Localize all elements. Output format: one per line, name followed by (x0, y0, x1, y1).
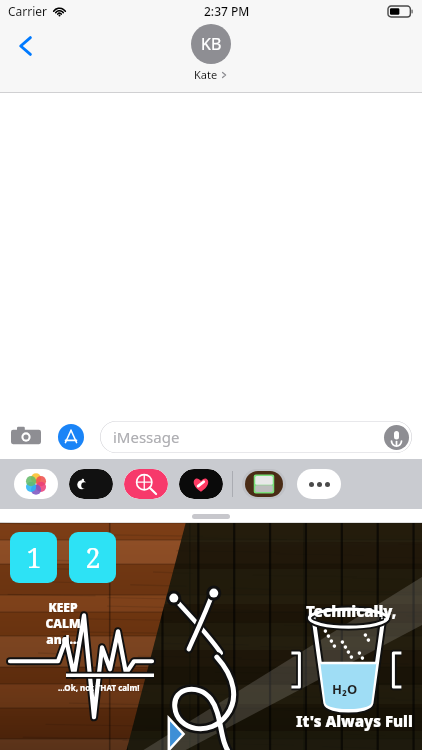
button[interactable]: App Store (56, 422, 86, 452)
button[interactable]: Images (124, 469, 168, 499)
staticText: 2:37 PM (204, 3, 250, 19)
button[interactable]: KB (191, 24, 231, 82)
button[interactable]: iMessage (100, 421, 412, 453)
staticText: H₂O (332, 680, 358, 698)
staticText: Technically, (306, 601, 397, 621)
button[interactable]: 1 (10, 532, 57, 583)
button[interactable]: Photos (14, 469, 58, 499)
button[interactable]: Stethoscope sticker (160, 589, 278, 734)
button[interactable]: Apple Pay (69, 469, 113, 499)
staticText: 1 (26, 539, 42, 576)
button[interactable]: Camera (10, 421, 42, 453)
staticText: 2 (85, 539, 101, 576)
button[interactable]: Resize panel (192, 514, 230, 519)
staticText: It's Always Full (296, 711, 413, 731)
staticText: Carrier (8, 3, 48, 19)
staticText: and... (46, 631, 80, 647)
button[interactable]: Dictate (383, 424, 409, 450)
button[interactable]: Water glass sticker (286, 591, 420, 706)
staticText: ...Ok, not THAT calm! (58, 682, 140, 693)
staticText: KEEP (48, 599, 78, 615)
button[interactable]: Sticker pack (242, 469, 286, 499)
button[interactable]: Digital Touch (179, 469, 223, 499)
staticText: iMessage (113, 427, 180, 447)
button[interactable]: Back (4, 24, 48, 68)
button[interactable]: Keep calm sticker (2, 597, 147, 693)
staticText: CALM (45, 615, 81, 631)
staticText: Kate (194, 67, 218, 82)
button[interactable]: 2 (69, 532, 116, 583)
button[interactable]: More apps (297, 469, 341, 499)
staticText: KB (201, 33, 222, 55)
